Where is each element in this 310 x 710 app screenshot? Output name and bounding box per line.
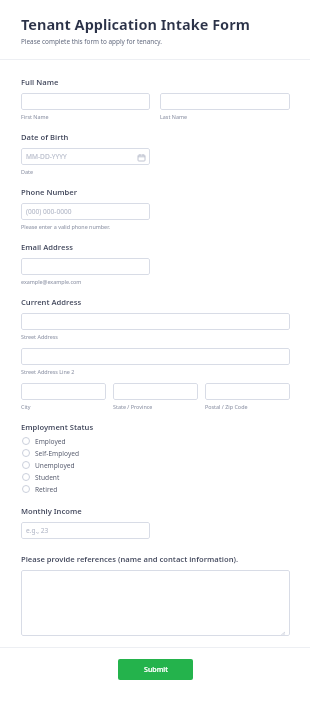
staticText: Self-Employed: [35, 449, 80, 458]
staticText: Submit: [144, 665, 168, 675]
staticText: City: [21, 403, 31, 410]
button[interactable]: [21, 313, 290, 330]
button[interactable]: Unemployed: [21, 459, 290, 471]
button[interactable]: [21, 348, 290, 365]
staticText: Street Address: [21, 333, 58, 340]
staticText: Tenant Application Intake Form: [21, 14, 250, 34]
staticText: Please complete this form to apply for t…: [21, 37, 163, 46]
staticText: Email Address: [21, 242, 73, 252]
button[interactable]: Student: [21, 471, 290, 483]
button[interactable]: Employed: [21, 435, 290, 447]
staticText: Employment Status: [21, 422, 94, 432]
staticText: Monthly Income: [21, 506, 82, 516]
staticText: Retired: [35, 485, 58, 494]
staticText: Student: [35, 473, 60, 482]
staticText: Postal / Zip Code: [205, 403, 248, 410]
staticText: Street Address Line 2: [21, 368, 75, 375]
button[interactable]: e.g., 23: [21, 522, 150, 539]
button[interactable]: [21, 383, 106, 400]
staticText: Current Address: [21, 297, 82, 307]
staticText: Employed: [35, 437, 66, 446]
staticText: e.g., 23: [26, 526, 49, 535]
staticText: MM-DD-YYYY: [26, 152, 67, 161]
button[interactable]: [21, 93, 150, 110]
other: Open calendar: [137, 153, 145, 161]
button[interactable]: Submit: [118, 659, 193, 680]
staticText: Date of Birth: [21, 132, 69, 142]
button[interactable]: [160, 93, 290, 110]
staticText: Please provide references (name and cont…: [21, 554, 239, 564]
staticText: State / Province: [113, 403, 153, 410]
staticText: example@example.com: [21, 278, 82, 285]
button[interactable]: Retired: [21, 483, 290, 495]
button[interactable]: [21, 258, 150, 275]
staticText: Unemployed: [35, 461, 75, 470]
button[interactable]: [21, 570, 290, 636]
button[interactable]: Self-Employed: [21, 447, 290, 459]
staticText: Last Name: [160, 113, 187, 120]
button[interactable]: [205, 383, 290, 400]
staticText: Please enter a valid phone number.: [21, 223, 110, 230]
staticText: First Name: [21, 113, 49, 120]
staticText: Full Name: [21, 77, 59, 87]
staticText: (000) 000-0000: [26, 207, 72, 216]
button[interactable]: [113, 383, 198, 400]
staticText: Date: [21, 168, 33, 175]
button[interactable]: MM-DD-YYYY: [21, 148, 150, 165]
button[interactable]: (000) 000-0000: [21, 203, 150, 220]
staticText: Phone Number: [21, 187, 78, 197]
